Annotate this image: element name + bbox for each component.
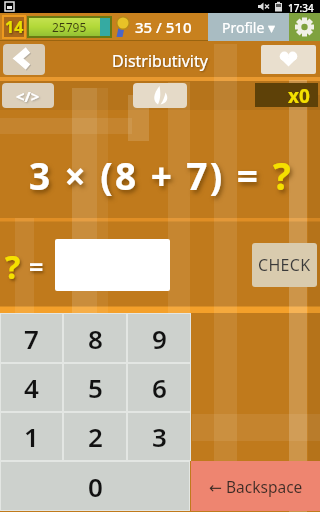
staticText: = — [29, 249, 44, 283]
button[interactable]: 0 — [0, 461, 190, 511]
staticText: x0 — [288, 83, 310, 107]
button[interactable] — [55, 239, 170, 291]
button[interactable]: 2 — [63, 412, 127, 461]
button[interactable] — [289, 13, 320, 41]
button[interactable]: Profile ▾ — [208, 13, 289, 41]
button[interactable]: 6 — [127, 363, 191, 412]
staticText: 6 — [152, 370, 167, 405]
button[interactable]: ← Backspace — [191, 461, 320, 511]
staticText: 7 — [24, 321, 39, 356]
button[interactable]: 9 — [127, 313, 191, 363]
button[interactable] — [261, 45, 316, 74]
staticText: 9 — [152, 321, 167, 356]
staticText: 8 — [88, 321, 103, 356]
staticText: ? — [273, 150, 291, 200]
button[interactable]: 1 — [0, 412, 63, 461]
staticText: 1 — [24, 419, 39, 454]
staticText: ← Backspace — [209, 476, 303, 497]
button[interactable]: 7 — [0, 313, 63, 363]
button[interactable]: 4 — [0, 363, 63, 412]
staticText: 5 — [88, 370, 103, 405]
staticText: 3 — [152, 419, 167, 454]
button[interactable]: 8 — [63, 313, 127, 363]
button[interactable] — [133, 83, 187, 108]
staticText: Distributivity — [0, 50, 320, 72]
button[interactable]: 5 — [63, 363, 127, 412]
staticText: 25795 — [52, 19, 87, 35]
staticText: Profile ▾ — [222, 18, 276, 37]
staticText: ? — [5, 245, 21, 289]
button[interactable]: </> — [2, 83, 54, 108]
staticText: 4 — [24, 370, 39, 405]
staticText: 0 — [88, 469, 103, 504]
staticText: 3 × (8 + 7) = — [29, 150, 273, 200]
staticText: 14 — [5, 16, 24, 38]
button[interactable] — [3, 44, 45, 75]
staticText: CHECK — [258, 254, 311, 276]
button[interactable]: CHECK — [252, 243, 317, 287]
staticText: 2 — [88, 419, 103, 454]
staticText: </> — [16, 86, 40, 106]
button[interactable]: 3 — [127, 412, 191, 461]
staticText: 17:34 — [288, 1, 314, 14]
staticText: 35 / 510 — [135, 17, 192, 37]
